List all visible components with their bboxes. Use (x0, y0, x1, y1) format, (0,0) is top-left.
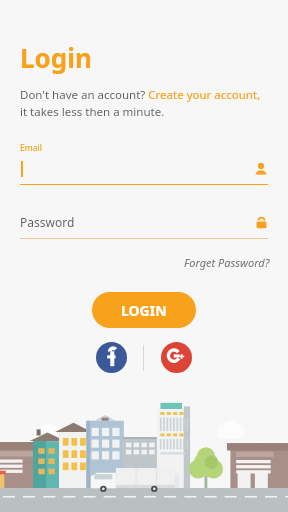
staticText: Password (20, 214, 75, 230)
button[interactable]: Password (20, 211, 268, 233)
button[interactable]: Forget Password? (184, 255, 270, 270)
button[interactable] (20, 158, 268, 180)
button[interactable]: LOGIN (92, 292, 196, 328)
button[interactable]: Sign in with Facebook (96, 342, 127, 373)
staticText: Email (20, 142, 42, 154)
button[interactable]: Sign in with Google (161, 342, 192, 373)
staticText: Login (20, 40, 92, 75)
staticText: LOGIN (121, 301, 167, 320)
staticText: Don't have an account? Create your accou… (20, 87, 264, 120)
staticText: Forget Password? (184, 255, 270, 270)
